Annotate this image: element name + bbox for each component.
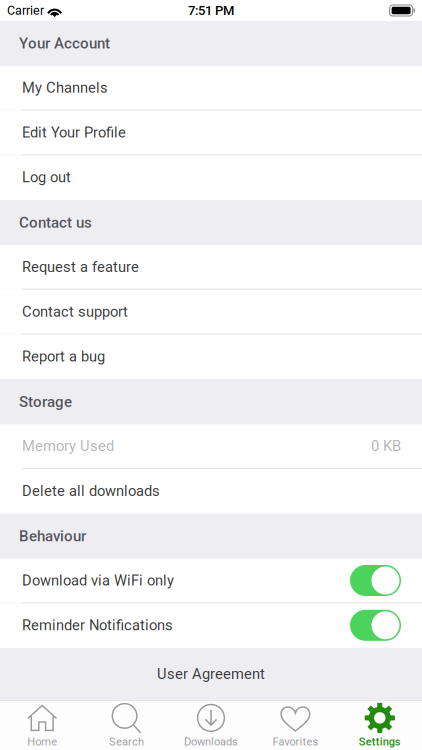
staticText: Contact us — [19, 214, 92, 231]
staticText: Search — [109, 735, 144, 748]
staticText: Favorites — [272, 735, 318, 748]
staticText: Settings — [359, 735, 401, 748]
staticText: Storage — [19, 393, 72, 411]
button[interactable]: Reminder Notifications — [350, 610, 401, 641]
button[interactable]: Edit Your Profile — [0, 111, 422, 154]
button[interactable]: Request a feature — [0, 245, 422, 289]
button[interactable]: Downloads — [169, 701, 253, 750]
staticText: Log out — [22, 169, 71, 186]
button[interactable]: Contact support — [0, 290, 422, 334]
staticText: Delete all downloads — [22, 482, 160, 499]
staticText: My Channels — [22, 79, 108, 96]
staticText: Downloads — [184, 735, 238, 748]
staticText: Behaviour — [19, 527, 86, 545]
button[interactable]: Home — [0, 701, 84, 750]
staticText: Your Account — [19, 35, 110, 52]
button[interactable]: User Agreement — [0, 648, 422, 700]
button[interactable]: Delete all downloads — [0, 469, 422, 513]
button[interactable]: Favorites — [253, 701, 338, 750]
staticText: Contact support — [22, 303, 128, 320]
button[interactable]: Settings — [338, 701, 422, 750]
button[interactable]: Report a bug — [0, 335, 422, 378]
staticText: Edit Your Profile — [22, 124, 126, 141]
button[interactable]: Download via WiFi only — [350, 565, 401, 596]
staticText: 7:51 PM — [188, 3, 234, 18]
staticText: Carrier — [7, 3, 44, 18]
staticText: Home — [27, 735, 57, 748]
button[interactable]: My Channels — [0, 66, 422, 110]
button[interactable]: Search — [84, 701, 169, 750]
staticText: Reminder Notifications — [22, 617, 173, 634]
staticText: Memory Used — [22, 437, 114, 455]
staticText: User Agreement — [157, 665, 265, 683]
staticText: Download via WiFi only — [22, 572, 174, 589]
staticText: 0 KB — [371, 437, 401, 455]
staticText: Report a bug — [22, 348, 105, 365]
button[interactable]: Log out — [0, 155, 422, 199]
staticText: Request a feature — [22, 258, 139, 275]
